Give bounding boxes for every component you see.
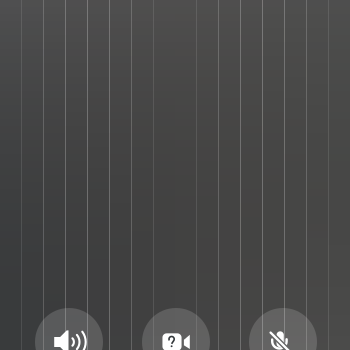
- button[interactable]: Speaker: [35, 308, 103, 350]
- button[interactable]: Mute: [249, 308, 317, 350]
- button[interactable]: Turn Camera Off: [142, 308, 210, 350]
